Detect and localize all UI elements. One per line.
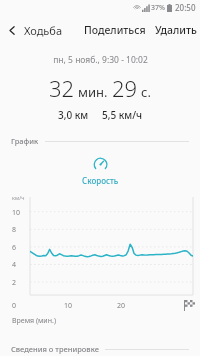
- staticText: Время (мин.): [12, 316, 56, 326]
- staticText: мин.: [78, 83, 108, 101]
- staticText: Скорость: [82, 175, 119, 186]
- staticText: 29: [112, 73, 138, 103]
- staticText: 3,0 км: [58, 108, 89, 122]
- staticText: 4: [12, 260, 17, 270]
- staticText: Ходьба: [24, 23, 63, 38]
- staticText: 20: [117, 301, 126, 311]
- staticText: 20:50: [175, 2, 196, 13]
- staticText: Поделиться: [84, 23, 146, 37]
- button[interactable]: Назад: [0, 15, 24, 45]
- staticText: График: [11, 136, 39, 146]
- staticText: 5,5 км/ч: [102, 108, 143, 122]
- staticText: 32: [49, 73, 75, 103]
- button[interactable]: Удалить: [155, 15, 197, 45]
- other: Финиш: [184, 300, 195, 311]
- staticText: 6: [12, 243, 17, 253]
- staticText: 8: [12, 225, 17, 235]
- staticText: Сведения о тренировке: [11, 344, 99, 354]
- staticText: км/ч: [12, 194, 25, 201]
- staticText: 37%: [151, 3, 165, 13]
- staticText: Удалить: [155, 23, 197, 37]
- staticText: пн, 5 нояб., 9:30 - 10:02: [53, 54, 148, 66]
- staticText: 2: [12, 278, 17, 288]
- staticText: с.: [141, 83, 151, 101]
- staticText: 10: [12, 208, 21, 218]
- button[interactable]: Поделиться: [84, 15, 146, 45]
- staticText: 0: [12, 301, 17, 311]
- button[interactable]: Скорость: [0, 157, 200, 186]
- button[interactable]: Ходьба: [24, 15, 63, 45]
- staticText: 10: [64, 301, 73, 311]
